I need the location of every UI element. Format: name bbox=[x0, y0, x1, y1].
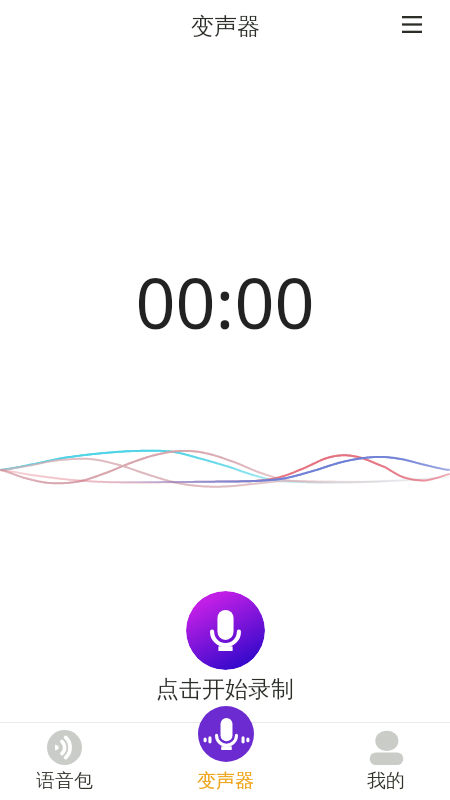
button[interactable]: Start recording bbox=[186, 591, 265, 670]
staticText: 语音包 bbox=[36, 769, 93, 793]
staticText: 变声器 bbox=[197, 769, 254, 793]
staticText: 点击开始录制 bbox=[0, 675, 450, 704]
staticText: 变声器 bbox=[191, 12, 260, 41]
staticText: 00:00 bbox=[0, 254, 450, 349]
button[interactable]: 我的 bbox=[330, 722, 441, 800]
button[interactable]: 变声器 bbox=[170, 722, 281, 800]
staticText: 我的 bbox=[367, 769, 405, 793]
button[interactable]: 语音包 bbox=[9, 722, 120, 800]
button[interactable]: Menu bbox=[391, 5, 433, 47]
